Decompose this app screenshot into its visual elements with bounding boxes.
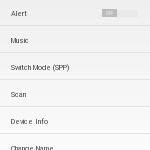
staticText: Change Name xyxy=(11,144,54,150)
button[interactable]: Scan xyxy=(0,80,150,107)
button[interactable]: Change Name xyxy=(0,134,150,150)
button[interactable]: Alert xyxy=(0,0,150,26)
staticText: Music xyxy=(11,36,29,44)
staticText: Device Info xyxy=(11,117,48,125)
button[interactable]: Alert toggle, off xyxy=(102,9,138,17)
button[interactable]: Device Info xyxy=(0,107,150,134)
staticText: Alert xyxy=(11,9,28,17)
staticText: OFF xyxy=(106,11,113,16)
button[interactable]: Switch Mode (SPP) xyxy=(0,53,150,80)
staticText: Scan xyxy=(11,90,26,98)
button[interactable]: Music xyxy=(0,26,150,53)
staticText: Switch Mode (SPP) xyxy=(11,63,69,71)
